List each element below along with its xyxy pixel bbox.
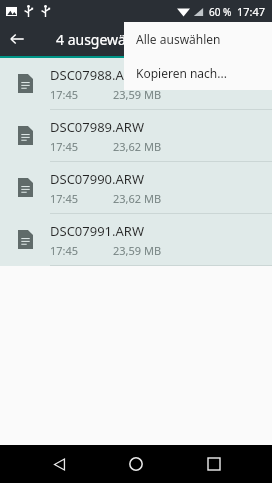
- button[interactable]: DSC07990.ARW: [0, 162, 272, 213]
- staticText: 17:45: [50, 139, 79, 154]
- button[interactable]: DSC07988.ARW: [0, 58, 272, 109]
- staticText: 23,59 MB: [113, 87, 162, 102]
- button[interactable]: Übersicht: [195, 445, 233, 483]
- staticText: Kopieren nach...: [136, 65, 227, 81]
- button[interactable]: Kopieren nach...: [124, 56, 272, 90]
- staticText: DSC07989.ARW: [50, 118, 144, 136]
- staticText: Alle auswählen: [136, 31, 221, 47]
- button[interactable]: DSC07989.ARW: [0, 110, 272, 161]
- staticText: DSC07990.ARW: [50, 170, 144, 188]
- button[interactable]: Alle auswählen: [124, 22, 272, 56]
- button[interactable]: Zurück: [0, 22, 34, 56]
- staticText: 17:45: [50, 191, 79, 206]
- staticText: 60 %: [209, 5, 232, 19]
- staticText: 4 ausgewählt: [56, 30, 144, 49]
- staticText: 17:47: [237, 4, 266, 19]
- staticText: 17:45: [50, 87, 79, 102]
- staticText: DSC07991.ARW: [50, 222, 144, 240]
- button[interactable]: Zurück: [40, 445, 78, 483]
- button[interactable]: Startbildschirm: [117, 445, 155, 483]
- staticText: 17:45: [50, 243, 79, 258]
- button[interactable]: DSC07991.ARW: [0, 214, 272, 265]
- staticText: 23,59 MB: [113, 243, 162, 258]
- staticText: 23,62 MB: [113, 191, 162, 206]
- staticText: 23,62 MB: [113, 139, 162, 154]
- staticText: DSC07988.ARW: [50, 66, 144, 84]
